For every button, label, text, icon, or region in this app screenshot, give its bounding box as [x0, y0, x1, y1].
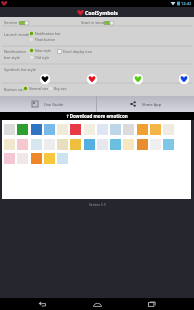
button[interactable]: Heart style	[86, 73, 98, 85]
button[interactable]: ↑Download more emoticon	[0, 112, 194, 120]
staticText: Don't display icon	[63, 49, 93, 54]
staticText: bar style	[4, 55, 21, 60]
button[interactable]: Home	[84, 298, 110, 310]
button[interactable]: Notification bar	[29, 31, 61, 36]
button[interactable]: Big size	[48, 86, 67, 91]
button[interactable]: Heart style	[39, 73, 51, 85]
button[interactable]: Don't display icon	[57, 49, 93, 54]
staticText: Service	[4, 20, 18, 25]
staticText: Launch mode	[4, 32, 30, 37]
button[interactable]: Service toggle	[19, 21, 29, 25]
staticText: Version 5.9	[89, 203, 106, 207]
button[interactable]: Start in boot toggle	[104, 21, 114, 25]
staticText: 12:42	[181, 1, 192, 6]
staticText: Notification bar	[35, 31, 61, 36]
staticText: Normal size	[29, 86, 49, 91]
button[interactable]: Heart style	[132, 73, 144, 85]
staticText: ↑Download more emoticon	[66, 113, 128, 119]
staticText: Button size	[4, 87, 25, 92]
button[interactable]: New style	[29, 48, 51, 53]
staticText: Old style	[35, 55, 50, 60]
staticText: Symbols list style	[4, 67, 36, 72]
staticText: New style	[35, 48, 51, 53]
button[interactable]: Normal size	[23, 86, 49, 91]
button[interactable]: Heart style	[178, 73, 190, 85]
staticText: Share App	[142, 102, 162, 107]
button[interactable]: Back	[29, 298, 55, 310]
staticText: Use Guide	[44, 102, 64, 107]
button[interactable]: Recent apps	[139, 298, 165, 310]
staticText: Float button	[35, 37, 56, 42]
button[interactable]: Float button	[29, 37, 56, 42]
staticText: CoolSymbols	[85, 9, 118, 16]
staticText: Big size	[54, 86, 67, 91]
button[interactable]: Share App	[97, 96, 194, 112]
button[interactable]: Use Guide	[0, 96, 96, 112]
staticText: Start in boot	[81, 20, 105, 25]
button[interactable]: Old style	[29, 55, 50, 60]
staticText: Notification	[4, 49, 26, 54]
